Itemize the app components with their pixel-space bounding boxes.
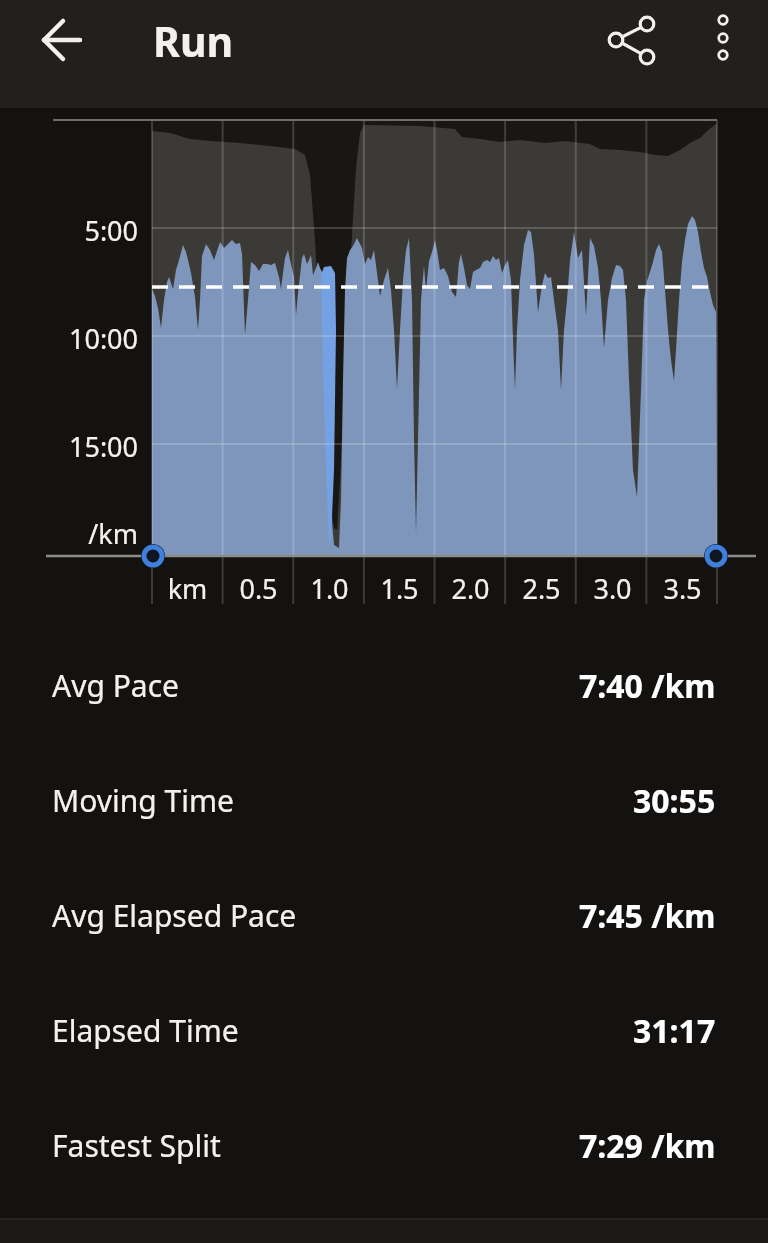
staticText: 7:45 /km	[579, 894, 716, 938]
staticText: 3.5	[647, 570, 718, 607]
staticText: Avg Elapsed Pace	[52, 895, 297, 936]
staticText: 2.0	[435, 570, 506, 607]
staticText: 3.0	[577, 570, 648, 607]
button[interactable]	[694, 7, 752, 65]
staticText: Avg Pace	[52, 665, 179, 706]
staticText: 1.5	[364, 570, 435, 607]
staticText: 15:00	[18, 428, 138, 465]
button[interactable]	[26, 4, 98, 76]
staticText: 7:40 /km	[579, 664, 716, 708]
staticText: Fastest Split	[52, 1125, 221, 1166]
staticText: Moving Time	[52, 780, 234, 821]
staticText: 10:00	[18, 320, 138, 357]
staticText: 1.0	[294, 570, 365, 607]
staticText: Run	[153, 13, 234, 69]
staticText: 31:17	[633, 1009, 716, 1053]
staticText: 7:29 /km	[579, 1124, 716, 1168]
staticText: 2.5	[506, 570, 577, 607]
staticText: 5:00	[18, 212, 138, 249]
staticText: 30:55	[633, 779, 716, 823]
staticText: Elapsed Time	[52, 1010, 239, 1051]
staticText: km	[152, 570, 223, 607]
staticText: 0.5	[223, 570, 294, 607]
button[interactable]	[596, 5, 666, 75]
staticText: /km	[18, 515, 138, 552]
